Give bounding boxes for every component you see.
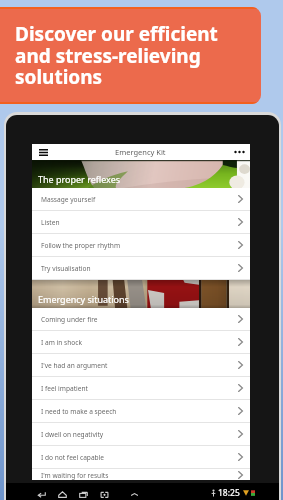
button[interactable]: I do not feel capable [32,446,250,468]
button[interactable]: I'm waiting for results [32,469,250,480]
button[interactable]: I feel impatient [32,377,250,399]
button[interactable]: Listen [32,211,250,233]
staticText: Listen [41,218,60,227]
button[interactable]: I've had an argument [32,354,250,376]
staticText: I need to make a speech [41,407,117,416]
staticText: I dwell on negativity [41,430,104,439]
button[interactable]: Massage yourself [32,188,250,210]
button[interactable]: More options [228,144,250,160]
button[interactable]: Recents [77,487,89,500]
staticText: Massage yourself [41,195,96,204]
button[interactable]: I need to make a speech [32,400,250,422]
staticText: Follow the proper rhythm [41,241,121,250]
staticText: 18:25 [218,487,240,499]
button[interactable]: Home [56,487,68,500]
button[interactable]: The proper reflexes [32,160,250,188]
staticText: Try visualisation [41,264,91,273]
button[interactable]: Emergency situations [32,280,250,308]
staticText: Emergency situations [38,293,129,305]
staticText: Emergency Kit [115,147,166,157]
staticText: I am in shock [41,338,82,347]
button[interactable]: Screenshot [98,487,110,500]
staticText: I've had an argument [41,361,108,370]
staticText: I feel impatient [41,384,88,393]
button[interactable]: Expand [128,487,140,500]
staticText: I do not feel capable [41,453,105,462]
button[interactable]: I am in shock [32,331,250,353]
button[interactable]: Coming under fire [32,308,250,330]
button[interactable]: Follow the proper rhythm [32,234,250,256]
button[interactable]: Menu [32,144,54,160]
button[interactable]: I dwell on negativity [32,423,250,445]
staticText: The proper reflexes [38,173,121,185]
staticText: Discover our efficient and stress-reliev… [15,21,218,89]
staticText: I'm waiting for results [41,471,109,480]
button[interactable]: Try visualisation [32,257,250,279]
button[interactable]: Back [35,487,47,500]
staticText: Coming under fire [41,315,98,324]
